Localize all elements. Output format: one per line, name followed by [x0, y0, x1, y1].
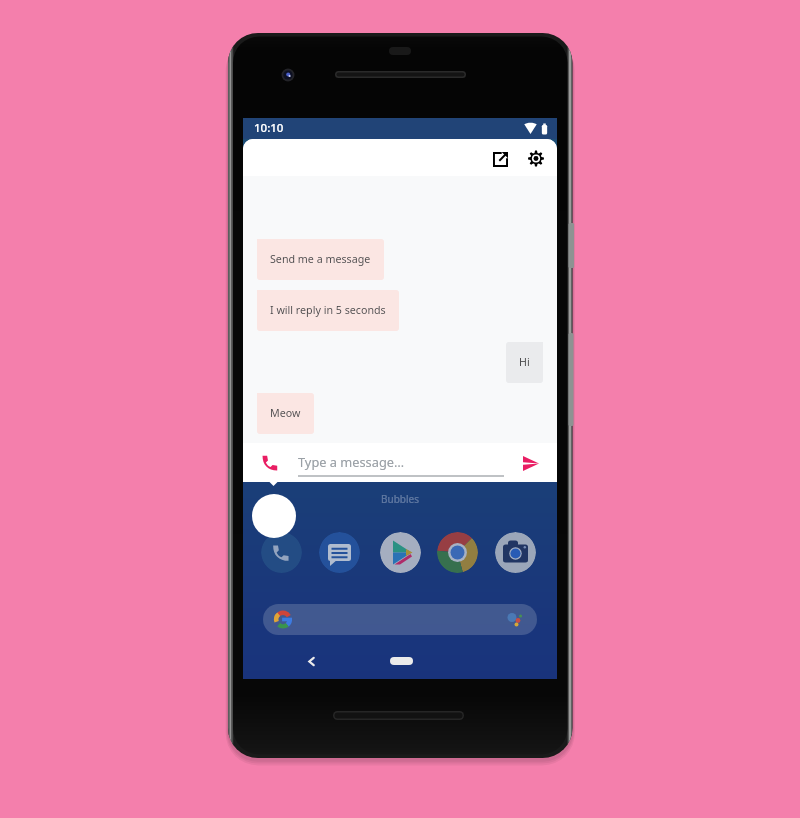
button[interactable] — [495, 532, 536, 573]
button[interactable]: Settings — [521, 143, 551, 173]
button[interactable]: Send me a message — [257, 239, 384, 280]
button[interactable]: Open in app — [485, 143, 515, 173]
staticText: 10:10 — [254, 120, 284, 136]
staticText: Type a message… — [298, 453, 405, 470]
button[interactable]: Home — [390, 657, 413, 665]
button[interactable] — [319, 532, 360, 573]
button[interactable] — [263, 604, 537, 635]
staticText: Meow — [270, 406, 301, 421]
button[interactable]: Hi — [506, 342, 543, 383]
staticText: Bubbles — [381, 492, 419, 506]
button[interactable]: Back — [302, 650, 320, 670]
button[interactable] — [437, 532, 478, 573]
button[interactable]: Meow — [257, 393, 314, 434]
staticText: Hi — [519, 355, 530, 370]
button[interactable]: Chat bubble — [252, 494, 296, 538]
button[interactable] — [261, 532, 302, 573]
button[interactable]: I will reply in 5 seconds — [257, 290, 399, 331]
staticText: Send me a message — [270, 252, 371, 267]
button[interactable] — [380, 532, 421, 573]
button[interactable]: Call — [260, 452, 281, 473]
staticText: I will reply in 5 seconds — [270, 303, 386, 318]
button[interactable]: Send — [519, 451, 543, 475]
